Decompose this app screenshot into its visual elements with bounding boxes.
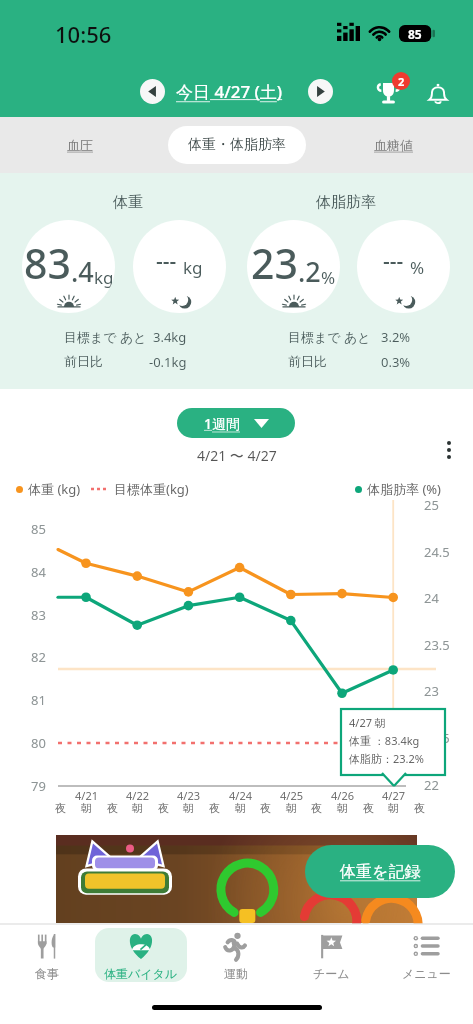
staticText: .2 [298,253,321,290]
button[interactable]: 体重バイタル [94,924,188,986]
staticText: 85 [31,520,46,538]
staticText: 食事 [35,966,59,981]
staticText: 83 [31,606,46,624]
staticText: 79 [31,777,46,795]
staticText: 体重 [113,193,143,212]
staticText: 夜 [209,801,220,815]
staticText: 25 [424,496,439,514]
button[interactable]: 運動 [188,924,283,986]
button[interactable]: メニュー [378,924,473,986]
staticText: .4 [71,253,94,290]
staticText: 体重 (kg) [28,480,81,498]
staticText: 23 [251,235,298,291]
staticText: 1週間 [204,414,241,433]
staticText: 80 [31,734,46,752]
button[interactable]: 1週間 [177,408,295,438]
staticText: 4/23 [177,788,200,803]
button[interactable]: 83 [22,220,115,313]
staticText: 4/26 [331,788,354,803]
staticText: チーム [313,966,350,981]
staticText: --- [156,247,177,276]
button[interactable]: Previous day [140,79,165,104]
button[interactable]: 今日 4/27 (土) [176,80,283,103]
button[interactable]: 食事 [0,924,94,986]
staticText: 前日比 [64,353,103,369]
staticText: 4/25 [280,788,303,803]
staticText: 23.5 [424,636,450,654]
staticText: 3.4kg [153,328,187,346]
staticText: 朝 [81,801,92,815]
staticText: -0.1kg [149,353,187,371]
staticText: 血糖値 [374,137,413,153]
staticText: 運動 [224,966,248,981]
button[interactable]: チーム [283,924,378,986]
staticText: 4/24 [229,788,252,803]
staticText: 82 [31,648,46,666]
staticText: 夜 [363,801,374,815]
staticText: 夜 [55,801,66,815]
button[interactable]: 23 [247,220,340,313]
staticText: 85 [408,26,422,42]
button[interactable]: Notifications [423,79,453,109]
staticText: 朝 [235,801,246,815]
staticText: メニュー [402,966,451,981]
staticText: 84 [31,563,46,581]
button[interactable]: 体重を記録 [305,845,455,898]
staticText: 23 [424,682,439,700]
staticText: 朝 [132,801,143,815]
staticText: % [410,256,425,279]
staticText: 81 [31,691,46,709]
button[interactable]: --- [133,220,226,313]
button[interactable]: Trophies [377,74,411,104]
staticText: 体重・体脂肪率 [188,136,286,154]
staticText: 体重を記録 [340,862,421,882]
staticText: 体脂肪率 [316,193,376,212]
staticText: 4/27 [382,788,405,803]
staticText: % [321,266,336,289]
staticText: 22 [424,776,439,794]
staticText: 朝 [286,801,297,815]
staticText: 夜 [260,801,271,815]
staticText: 体重バイタル [104,966,178,981]
staticText: 4/22 [126,788,149,803]
staticText: 4/21 〜 4/27 [197,446,277,465]
staticText: 3.2% [381,328,411,346]
staticText: 22.5 [424,729,450,747]
staticText: 体脂肪率 (%) [367,480,441,498]
button[interactable]: --- [357,220,450,313]
staticText: 10:56 [55,19,112,49]
staticText: 4/21 [75,788,98,803]
staticText: 体重 ：83.4kg [349,733,420,748]
staticText: kg [94,266,114,289]
staticText: --- [383,247,404,276]
button[interactable]: More options [436,437,462,463]
button[interactable]: 血糖値 [353,117,433,173]
staticText: kg [183,256,203,279]
staticText: 24.5 [424,543,450,561]
staticText: 夜 [414,801,425,815]
button[interactable] [56,835,417,923]
staticText: 夜 [158,801,169,815]
staticText: 24 [424,589,439,607]
staticText: 83 [24,235,71,291]
staticText: 夜 [107,801,118,815]
staticText: 4/27 朝 [349,715,386,730]
staticText: 目標体重(kg) [114,480,189,498]
button[interactable]: Next day [308,79,333,104]
staticText: 夜 [311,801,322,815]
staticText: 今日 4/27 (土) [176,80,283,103]
button[interactable]: 血圧 [40,117,120,173]
button[interactable]: 体重・体脂肪率 [168,126,306,164]
staticText: 体脂肪：23.2% [349,751,424,766]
staticText: 2 [398,74,405,89]
staticText: 血圧 [67,137,93,153]
staticText: 目標まで あと [288,328,371,346]
staticText: 目標まで あと [64,328,147,346]
staticText: 朝 [183,801,194,815]
staticText: 0.3% [381,353,411,371]
staticText: 朝 [337,801,348,815]
staticText: 朝 [388,801,399,815]
staticText: 前日比 [288,353,327,369]
